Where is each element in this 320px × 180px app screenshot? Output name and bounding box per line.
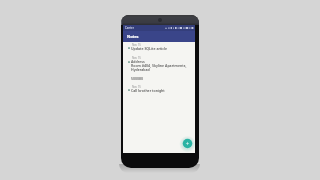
staticText: Room #404, Skyline Apartments,: [131, 63, 187, 68]
staticText: Call brother tonight: [131, 88, 165, 93]
staticText: Nov 15: [132, 85, 141, 89]
button[interactable]: Nov 15: [123, 85, 195, 93]
staticText: Carrier: [125, 26, 134, 30]
button[interactable]: Add note: [180, 136, 195, 151]
staticText: Hyderabad: [131, 67, 150, 72]
button[interactable]: Nov 15: [123, 56, 195, 72]
button[interactable]: Nov 15: [123, 43, 195, 51]
staticText: Update SQLite article: [131, 46, 168, 51]
staticText: Address: [131, 59, 145, 64]
staticText: Notes: [127, 34, 139, 39]
button[interactable]: Notes: [123, 31, 195, 42]
staticText: 500080: [131, 76, 144, 81]
staticText: Nov 15: [132, 43, 141, 47]
staticText: Nov 15: [132, 56, 141, 60]
